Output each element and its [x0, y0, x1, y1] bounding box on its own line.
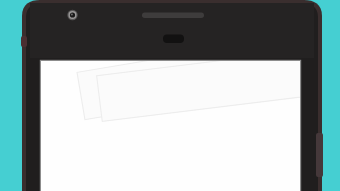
- button[interactable]: Phone app preview: [0, 0, 340, 191]
